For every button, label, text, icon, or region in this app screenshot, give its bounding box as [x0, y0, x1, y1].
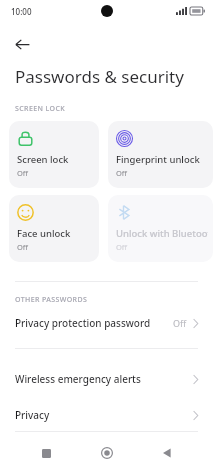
- staticText: Off: [17, 242, 29, 252]
- button[interactable]: Wireless emergency alerts: [0, 368, 213, 390]
- staticText: Privacy protection password: [15, 316, 173, 330]
- button[interactable]: Face unlock: [9, 195, 99, 262]
- button[interactable]: Recents: [31, 438, 61, 468]
- button[interactable]: Privacy protection password: [0, 312, 213, 334]
- staticText: Fingerprint unlock: [116, 153, 200, 166]
- staticText: Off: [17, 168, 29, 178]
- staticText: Off: [116, 168, 128, 178]
- button[interactable]: Unlock with Bluetooth: [108, 195, 213, 262]
- staticText: Face unlock: [17, 227, 71, 240]
- staticText: Unlock with Bluetooth: [116, 227, 208, 240]
- button[interactable]: Home: [92, 438, 122, 468]
- button[interactable]: Back: [152, 438, 182, 468]
- staticText: Privacy: [15, 408, 193, 422]
- staticText: 10:00: [11, 6, 32, 17]
- staticText: Wireless emergency alerts: [15, 372, 193, 386]
- button[interactable]: Back: [5, 27, 39, 61]
- staticText: OTHER PASSWORDS: [15, 295, 88, 305]
- staticText: Screen lock: [17, 153, 69, 166]
- button[interactable]: Screen lock: [9, 121, 99, 188]
- staticText: SCREEN LOCK: [15, 104, 66, 114]
- staticText: Off: [173, 317, 187, 329]
- staticText: Passwords & security: [15, 65, 184, 88]
- button[interactable]: Privacy: [0, 404, 213, 426]
- staticText: Off: [116, 242, 128, 252]
- button[interactable]: Fingerprint unlock: [108, 121, 213, 188]
